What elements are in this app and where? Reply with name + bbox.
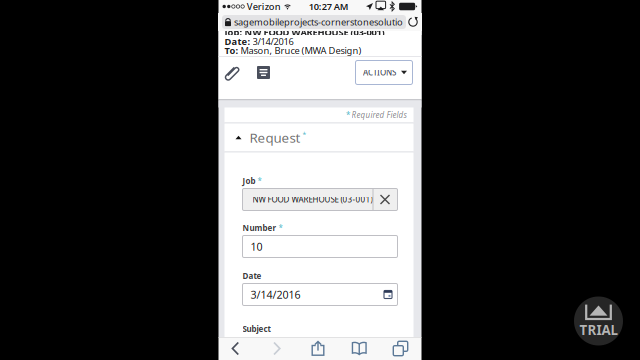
staticText: To: — [224, 44, 240, 57]
staticText: Date — [242, 271, 261, 281]
staticText: * — [302, 130, 306, 138]
button[interactable]: Notes — [254, 59, 272, 85]
staticText: 10:27 AM — [309, 0, 349, 13]
button[interactable]: Clear job — [372, 188, 397, 210]
staticText: Verizon — [247, 0, 281, 13]
staticText: Number — [242, 223, 276, 233]
staticText: Required Fields — [351, 110, 406, 120]
staticText: NW FOOD WAREHOUSE (03-001) — [252, 194, 372, 205]
staticText: 10 — [250, 239, 262, 254]
button[interactable]: Bookmarks — [345, 337, 373, 360]
staticText: sagemobileprojects-cornerstonesolutio — [234, 16, 403, 28]
button[interactable]: Share — [304, 337, 332, 360]
staticText: * — [346, 110, 350, 120]
button[interactable]: Request — [224, 123, 413, 151]
staticText: * — [257, 176, 261, 186]
button[interactable]: Reload — [406, 14, 420, 30]
staticText: TRIAL — [579, 321, 617, 339]
staticText: 3/14/2016 — [250, 287, 300, 302]
staticText: * — [278, 223, 282, 233]
button[interactable]: Tabs — [386, 337, 414, 360]
button[interactable]: Pick date — [378, 283, 397, 305]
staticText: 3/14/2016 — [252, 35, 293, 48]
button[interactable]: ACTIONS — [355, 60, 412, 84]
staticText: Date: — [224, 35, 252, 48]
button[interactable]: Back — [221, 337, 249, 360]
staticText: Subject — [242, 324, 270, 334]
staticText: Mason, Bruce (MWA Design) — [240, 44, 361, 57]
button[interactable]: Attachments — [223, 59, 241, 85]
staticText: Request — [249, 129, 300, 146]
button[interactable]: Forward — [263, 337, 291, 360]
staticText: Job: NW FOOD WAREHOUSE (03-001) — [224, 26, 384, 38]
staticText: Job — [242, 176, 255, 186]
staticText: ACTIONS — [363, 67, 396, 78]
